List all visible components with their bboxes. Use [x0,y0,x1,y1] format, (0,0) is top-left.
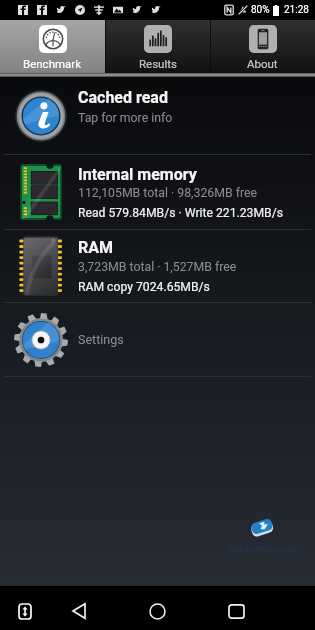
button[interactable]: RAM [0,230,315,302]
staticText: mobile-review.com [227,544,298,554]
staticText: Benchmark [23,57,82,70]
staticText: Cached read [78,88,168,107]
staticText: 80% [251,4,270,16]
button[interactable]: Results [105,20,210,73]
button[interactable]: Home [118,592,197,630]
staticText: Internal memory [78,165,197,184]
button[interactable]: Cached read [0,77,315,154]
staticText: RAM copy 7024.65MB/s [78,280,210,294]
staticText: 112,105MB total · 98,326MB free [78,186,258,200]
button[interactable]: Internal memory [0,155,315,229]
button[interactable]: Recent apps [197,592,276,630]
staticText: RAM [78,238,113,257]
button[interactable]: About [210,20,315,73]
button[interactable]: Settings [0,303,315,376]
button[interactable]: Benchmark [0,20,105,73]
staticText: Read 579.84MB/s · Write 221.23MB/s [78,206,284,220]
staticText: Results [139,57,177,70]
staticText: About [247,57,278,70]
staticText: Settings [78,332,124,347]
button[interactable]: Back [39,592,118,630]
button[interactable]: Rotate screen [0,592,50,630]
staticText: Tap for more info [78,111,173,125]
staticText: 3,723MB total · 1,527MB free [78,260,237,274]
staticText: 21:28 [284,4,309,16]
